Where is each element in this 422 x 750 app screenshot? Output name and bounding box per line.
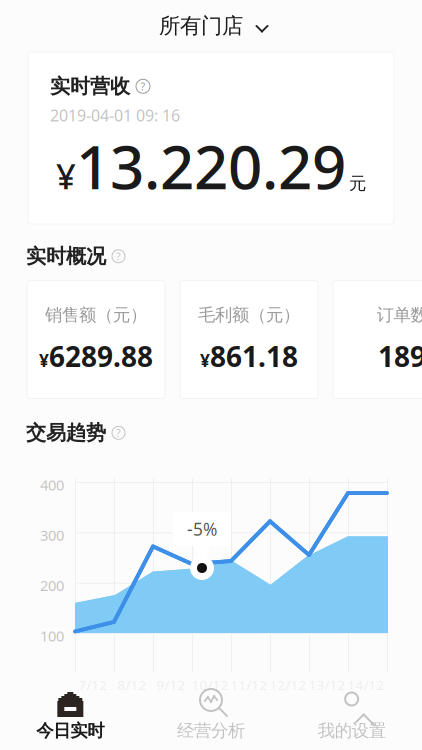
staticText: 销售额（元） (45, 304, 147, 326)
staticText: 7/12 (78, 676, 107, 694)
staticText: 所有门店 (159, 13, 243, 39)
button[interactable]: 我的设置 (281, 680, 422, 747)
staticText: 8/12 (117, 676, 146, 694)
staticText: ¥ (200, 349, 210, 372)
staticText: 100 (40, 626, 64, 645)
staticText: 今日实时 (36, 720, 104, 741)
staticText: 元 (349, 173, 366, 194)
button[interactable]: 今日实时 (0, 680, 141, 747)
staticText: 10/12 (191, 676, 228, 694)
staticText: ¥ (56, 153, 76, 199)
staticText: 经营分析 (177, 720, 245, 741)
staticText: 我的设置 (318, 720, 386, 741)
staticText: 实时营收 (50, 74, 130, 99)
staticText: 13.220.29 (76, 126, 346, 206)
staticText: -5% (187, 517, 217, 540)
staticText: 实时概况 (26, 244, 106, 269)
staticText: 200 (40, 576, 64, 595)
staticText: 交易趋势 (26, 421, 106, 445)
staticText: 2019-04-01 09: 16 (50, 105, 180, 126)
staticText: ? (140, 79, 145, 93)
staticText: 订单数 (376, 304, 422, 326)
staticText: 861.18 (210, 338, 298, 375)
staticText: 毛利额（元） (198, 304, 300, 326)
staticText: ? (116, 426, 121, 440)
staticText: ¥ (39, 349, 49, 372)
staticText: 12/12 (269, 676, 306, 694)
staticText: 13/12 (308, 676, 345, 694)
button[interactable]: 所有门店 (149, 7, 273, 45)
staticText: 189 (378, 338, 422, 375)
staticText: 14/12 (347, 676, 384, 694)
staticText: 400 (40, 475, 64, 494)
button[interactable]: 经营分析 (141, 680, 281, 747)
staticText: 300 (40, 525, 64, 545)
staticText: 11/12 (230, 676, 267, 694)
staticText: 6289.88 (49, 338, 153, 375)
staticText: ? (116, 249, 121, 263)
staticText: 9/12 (156, 676, 185, 694)
